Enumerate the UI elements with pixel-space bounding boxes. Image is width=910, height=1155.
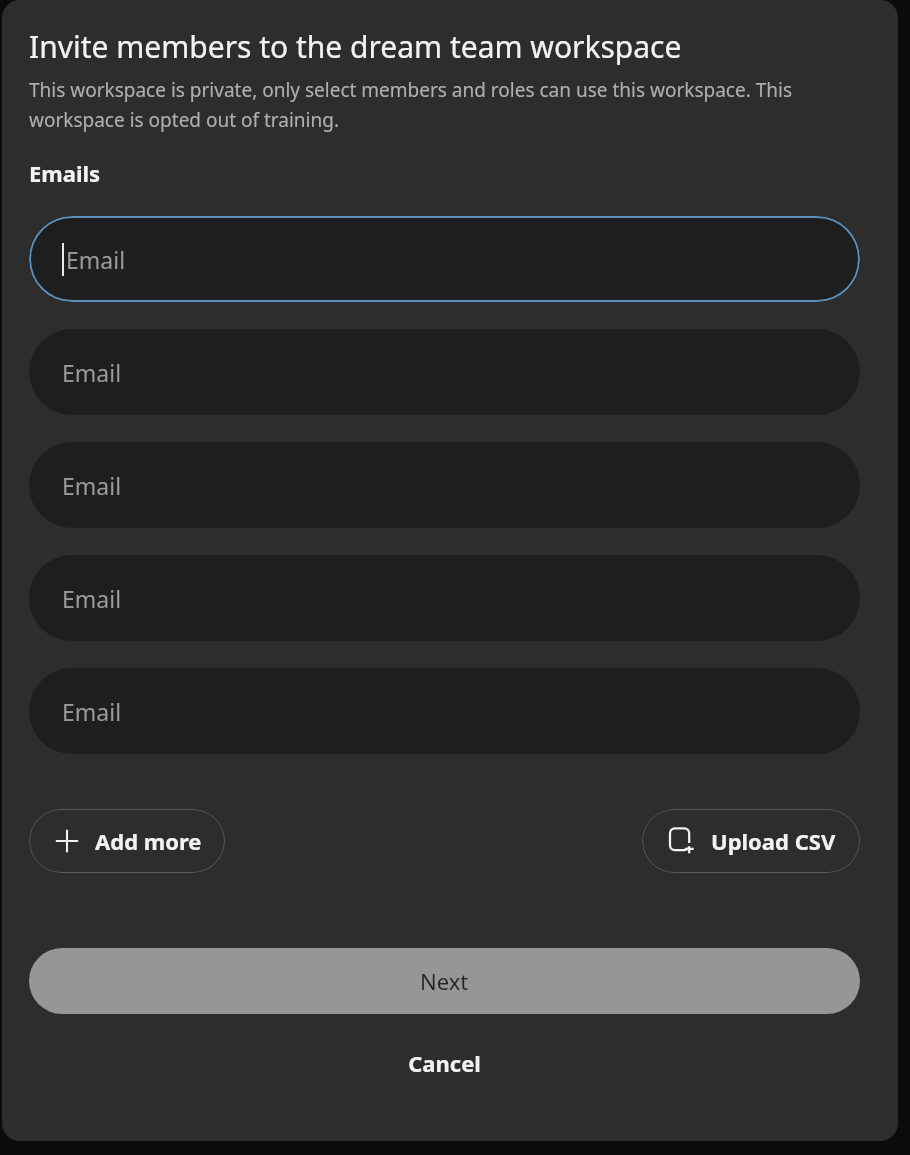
- staticText: Emails: [29, 158, 101, 188]
- button[interactable]: Email: [29, 555, 860, 641]
- staticText: Email: [62, 696, 122, 727]
- staticText: Invite members to the dream team workspa…: [29, 26, 682, 67]
- button[interactable]: Cancel: [29, 1040, 860, 1086]
- staticText: Cancel: [408, 1048, 481, 1078]
- staticText: Upload CSV: [711, 826, 836, 856]
- staticText: Add more: [95, 826, 202, 856]
- button[interactable]: Upload CSV: [642, 809, 860, 873]
- button[interactable]: Next: [29, 948, 860, 1014]
- staticText: Email: [62, 357, 122, 388]
- staticText: Email: [62, 470, 122, 501]
- button[interactable]: Email: [29, 216, 860, 302]
- button[interactable]: Add more: [29, 809, 225, 873]
- staticText: This workspace is private, only select m…: [29, 77, 838, 132]
- staticText: Email: [66, 244, 126, 275]
- button[interactable]: Email: [29, 668, 860, 754]
- staticText: Email: [62, 583, 122, 614]
- staticText: Next: [420, 966, 469, 996]
- button[interactable]: Email: [29, 442, 860, 528]
- button[interactable]: Email: [29, 329, 860, 415]
